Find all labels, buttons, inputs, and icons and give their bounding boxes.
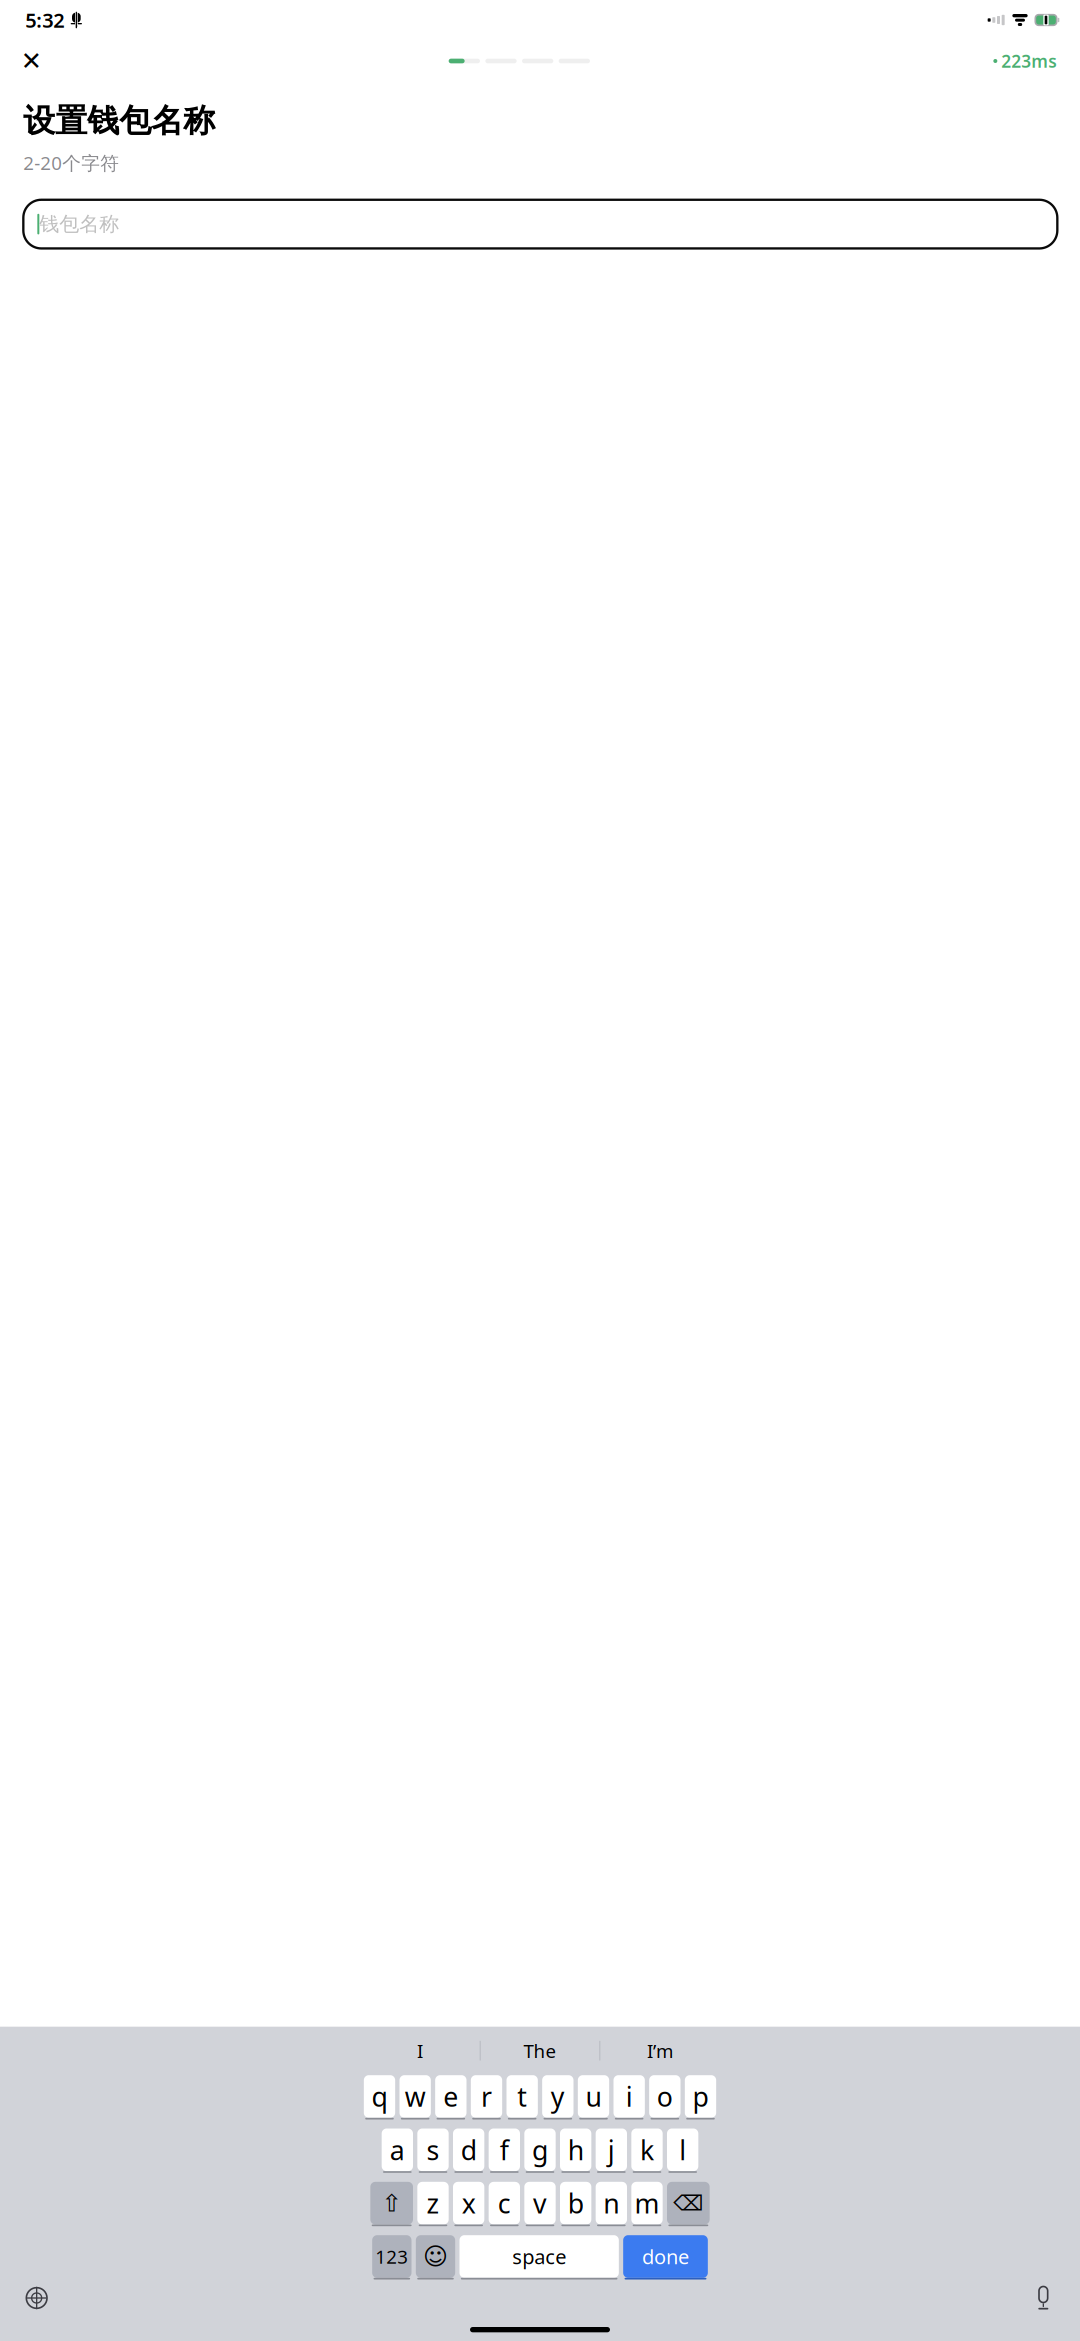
button[interactable]: I	[360, 2033, 480, 2068]
staticText: d	[461, 2132, 477, 2167]
staticText: i	[626, 2079, 633, 2114]
staticText: ☺	[423, 2243, 448, 2270]
staticText: 设置钱包名称	[23, 101, 215, 141]
button[interactable]: m	[631, 2181, 663, 2227]
button[interactable]: r	[471, 2075, 502, 2120]
staticText: e	[443, 2079, 458, 2114]
button[interactable]: b	[560, 2181, 591, 2227]
staticText: done	[642, 2243, 689, 2270]
staticText: ⌫	[673, 2191, 703, 2215]
staticText: z	[426, 2185, 439, 2221]
staticText: m	[634, 2185, 659, 2221]
staticText: 钱包名称	[39, 212, 119, 236]
button[interactable]: t	[506, 2075, 538, 2120]
staticText: p	[692, 2079, 708, 2114]
staticText: 2-20个字符	[23, 150, 119, 175]
button[interactable]: a	[382, 2128, 413, 2173]
staticText: ✕	[21, 46, 42, 76]
button[interactable]: g	[524, 2128, 556, 2173]
button[interactable]: o	[649, 2075, 680, 2120]
button[interactable]: x	[453, 2181, 484, 2227]
button[interactable]: h	[560, 2128, 591, 2173]
staticText: v	[533, 2185, 547, 2221]
staticText: t	[517, 2079, 527, 2114]
button[interactable]: d	[453, 2128, 484, 2173]
staticText: o	[657, 2079, 673, 2114]
button[interactable]: v	[524, 2181, 556, 2227]
button[interactable]: p	[685, 2075, 716, 2120]
staticText: k	[640, 2132, 654, 2167]
button[interactable]: Shift	[370, 2181, 413, 2227]
staticText: 123	[375, 2244, 408, 2269]
staticText: a	[390, 2132, 405, 2167]
staticText: space	[512, 2243, 566, 2270]
staticText: I	[417, 2038, 423, 2063]
button[interactable]: e	[435, 2075, 466, 2120]
staticText: c	[498, 2185, 511, 2221]
staticText: q	[371, 2079, 387, 2114]
button[interactable]: s	[417, 2128, 449, 2173]
button[interactable]: q	[364, 2075, 395, 2120]
staticText: n	[603, 2185, 619, 2221]
button[interactable]: f	[489, 2128, 520, 2173]
staticText: f	[500, 2132, 509, 2167]
button[interactable]: Close	[17, 47, 45, 75]
button[interactable]: space	[459, 2235, 619, 2280]
button[interactable]: w	[399, 2075, 431, 2120]
button[interactable]: n	[596, 2181, 627, 2227]
button[interactable]: z	[417, 2181, 449, 2227]
button[interactable]: 123	[372, 2235, 411, 2280]
button[interactable]: y	[542, 2075, 573, 2120]
staticText: g	[532, 2132, 548, 2167]
staticText: l	[679, 2132, 686, 2167]
button[interactable]: u	[578, 2075, 609, 2120]
staticText: 5:32	[25, 6, 64, 34]
button[interactable]: done	[623, 2235, 708, 2280]
staticText: h	[568, 2132, 584, 2167]
staticText: u	[585, 2079, 601, 2114]
staticText: 223ms	[1001, 49, 1057, 73]
staticText: y	[551, 2079, 565, 2114]
staticText: w	[405, 2079, 426, 2114]
button[interactable]: j	[596, 2128, 627, 2173]
staticText: x	[462, 2185, 476, 2221]
staticText: The	[523, 2038, 556, 2063]
button[interactable]: Emoji	[416, 2235, 455, 2280]
button[interactable]: Delete	[667, 2181, 710, 2227]
button[interactable]: k	[631, 2128, 663, 2173]
staticText: s	[426, 2132, 439, 2167]
staticText: r	[481, 2079, 492, 2114]
button[interactable]: Dictate	[1029, 2283, 1058, 2313]
button[interactable]: I’m	[600, 2033, 720, 2068]
staticText: b	[568, 2185, 584, 2221]
button[interactable]: i	[613, 2075, 645, 2120]
button[interactable]: The	[481, 2033, 599, 2068]
button[interactable]: l	[667, 2128, 698, 2173]
staticText: ⇧	[382, 2189, 402, 2217]
button[interactable]: c	[489, 2181, 520, 2227]
staticText: I’m	[647, 2038, 673, 2063]
staticText: j	[608, 2132, 615, 2167]
button[interactable]: Switch keyboard	[22, 2283, 51, 2313]
